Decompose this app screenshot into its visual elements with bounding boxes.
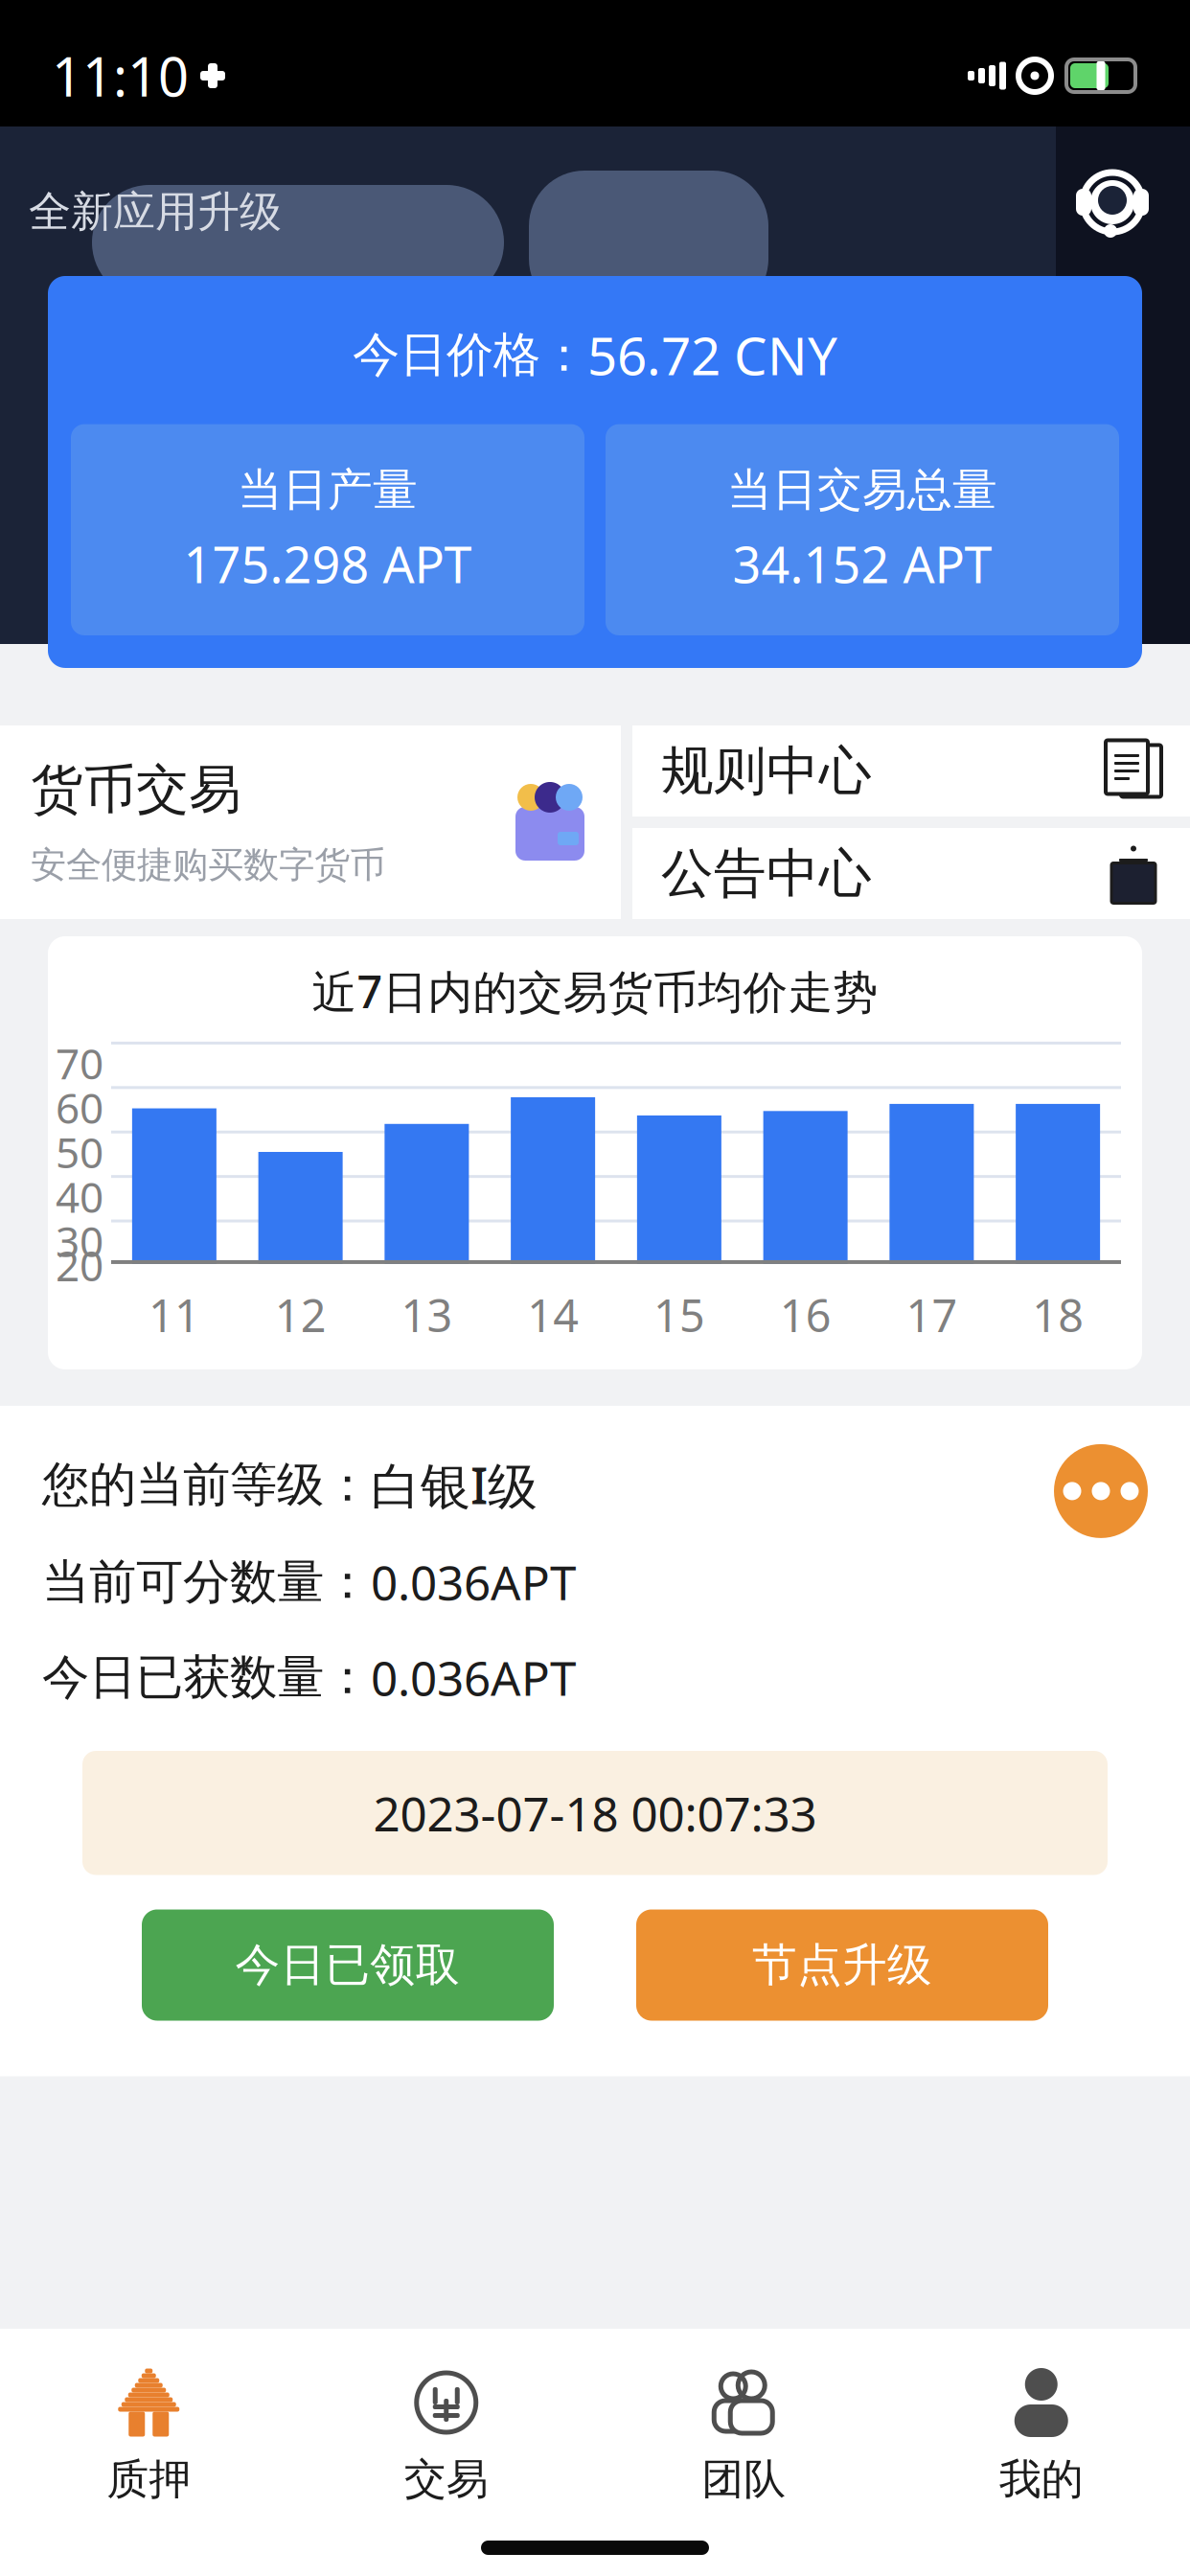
button[interactable]: 节点升级: [636, 1909, 1048, 2021]
button[interactable]: 交易: [297, 2361, 595, 2509]
staticText: APT Trend: [398, 489, 792, 594]
button[interactable]: 我的: [892, 2361, 1190, 2509]
staticText: 货币交易: [31, 758, 241, 822]
button[interactable]: 规则中心: [632, 725, 1190, 816]
staticText: 17: [906, 1285, 958, 1344]
staticText: 2023-07-18 00:07:33: [373, 1782, 817, 1844]
staticText: 15: [653, 1285, 705, 1344]
staticText: 12: [275, 1285, 326, 1344]
staticText: 11: [148, 1285, 200, 1344]
staticText: 团队: [702, 2453, 786, 2505]
staticText: 公告中心: [661, 841, 872, 906]
staticText: 60: [56, 1079, 103, 1135]
staticText: 交易: [404, 2453, 488, 2505]
staticText: 14: [527, 1285, 579, 1344]
staticText: 规则中心: [661, 739, 872, 803]
staticText: 56.72 CNY: [587, 320, 837, 390]
staticText: 30: [56, 1213, 103, 1269]
staticText: 您的当前等级：: [42, 1456, 371, 1514]
staticText: 今日已领取: [235, 1938, 460, 1992]
staticText: 11:10: [52, 40, 189, 111]
button[interactable]: 团队: [595, 2361, 892, 2509]
staticText: 50: [56, 1124, 103, 1180]
staticText: 全新应用升级: [29, 186, 282, 238]
staticText: 16: [780, 1285, 831, 1344]
staticText: 节点升级: [752, 1938, 932, 1992]
button[interactable]: 公告中心: [632, 828, 1190, 919]
staticText: 当日交易总量: [727, 462, 997, 517]
staticText: 40: [56, 1168, 103, 1224]
staticText: 34.152 APT: [732, 531, 992, 597]
button[interactable]: 更多: [1054, 1406, 1148, 1538]
staticText: 我的: [999, 2453, 1083, 2505]
staticText: 今日已获数量：: [42, 1648, 371, 1706]
staticText: 0.036APT: [371, 1551, 576, 1613]
button[interactable]: 货币交易: [0, 725, 621, 919]
staticText: 质押: [107, 2453, 191, 2505]
staticText: 0.036APT: [371, 1646, 576, 1709]
button[interactable]: 客服: [1075, 126, 1190, 240]
staticText: 白银I级: [371, 1452, 538, 1518]
staticText: 13: [401, 1285, 453, 1344]
staticText: 70: [56, 1035, 103, 1091]
button[interactable]: 质押: [0, 2361, 297, 2509]
staticText: 今日价格：: [353, 326, 587, 384]
staticText: 175.298 APT: [183, 531, 472, 597]
staticText: 当前可分数量：: [42, 1553, 371, 1611]
staticText: 安全便捷购买数字货币: [31, 843, 385, 887]
staticText: 近7日内的交易货币均价走势: [312, 961, 878, 1021]
staticText: 18: [1032, 1285, 1084, 1344]
button[interactable]: 今日已领取: [142, 1909, 554, 2021]
staticText: 当日产量: [238, 462, 418, 517]
staticText: 20: [56, 1237, 103, 1293]
